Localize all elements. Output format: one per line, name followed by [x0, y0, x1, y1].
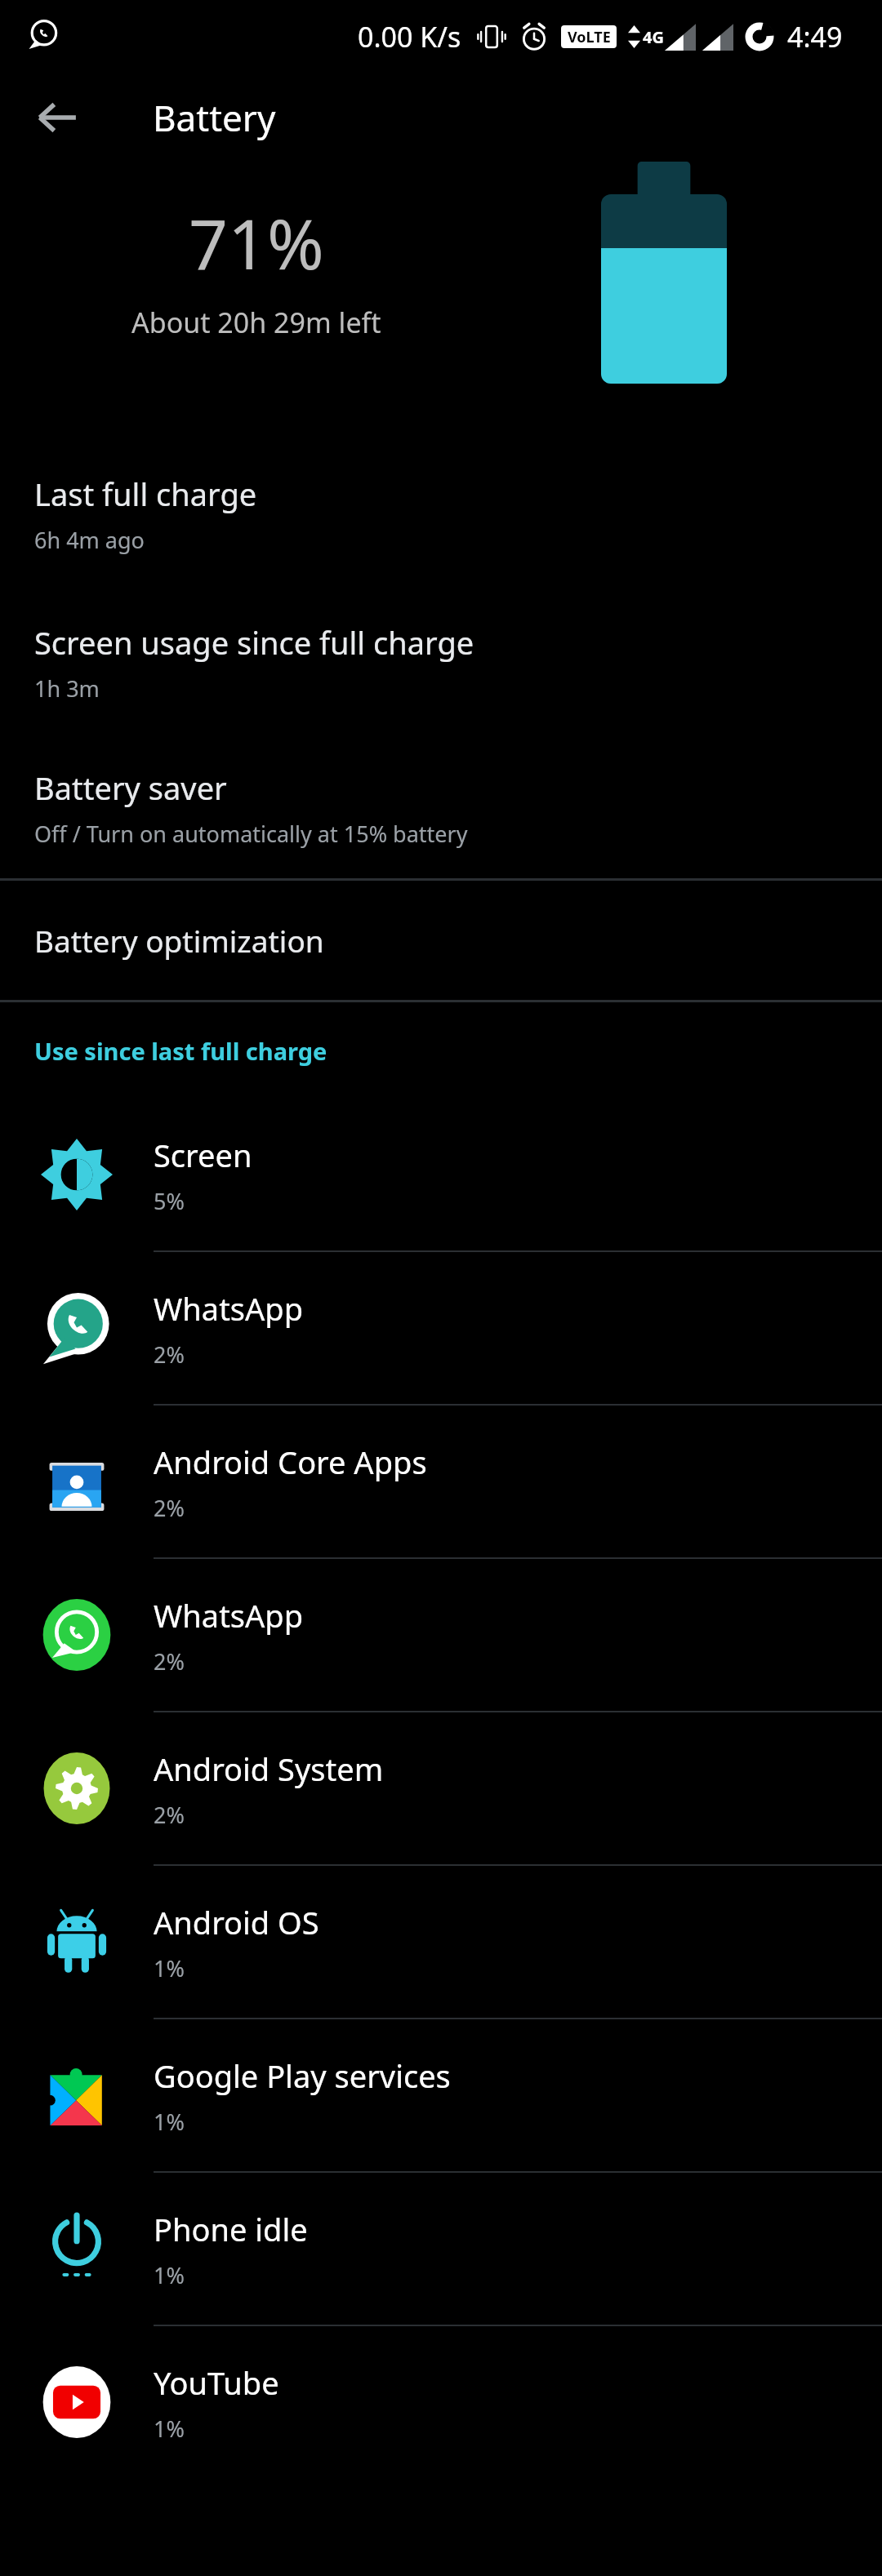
button[interactable]: Last full charge — [0, 439, 882, 588]
staticText: Android Core Apps — [154, 1441, 427, 1483]
staticText: 71% — [189, 196, 324, 289]
staticText: Off / Turn on automatically at 15% batte… — [34, 819, 468, 849]
staticText: 4G — [643, 26, 664, 48]
button[interactable]: Android System — [0, 1712, 882, 1864]
staticText: 6h 4m ago — [34, 525, 145, 555]
staticText: Screen — [154, 1134, 252, 1176]
button[interactable]: Google Play services — [0, 2019, 882, 2171]
staticText: YouTube — [154, 2361, 279, 2404]
staticText: Use since last full charge — [34, 1035, 327, 1067]
staticText: Android System — [154, 1748, 384, 1790]
button[interactable]: Screen usage since full charge — [0, 588, 882, 736]
staticText: 1% — [154, 2414, 185, 2444]
staticText: 0.00 K/s — [358, 18, 461, 56]
staticText: WhatsApp — [154, 1594, 304, 1637]
button[interactable]: WhatsApp — [0, 1559, 882, 1711]
staticText: 1% — [154, 2260, 185, 2290]
button[interactable]: Phone idle — [0, 2173, 882, 2325]
staticText: Battery — [153, 93, 276, 142]
staticText: Battery optimization — [34, 920, 324, 961]
staticText: 4:49 — [787, 18, 843, 56]
staticText: 5% — [154, 1186, 185, 1216]
button[interactable]: Android Core Apps — [0, 1406, 882, 1557]
button[interactable]: WhatsApp — [0, 1252, 882, 1404]
staticText: 2% — [154, 1800, 185, 1830]
staticText: Screen usage since full charge — [34, 621, 474, 664]
button[interactable]: YouTube — [0, 2326, 882, 2478]
staticText: 2% — [154, 1493, 185, 1523]
staticText: Google Play services — [154, 2054, 451, 2097]
staticText: 2% — [154, 1339, 185, 1370]
staticText: Phone idle — [154, 2208, 308, 2250]
staticText: 1% — [154, 1953, 185, 1983]
staticText: WhatsApp — [154, 1287, 304, 1330]
staticText: 1% — [154, 2107, 185, 2137]
button[interactable]: Android OS — [0, 1866, 882, 2018]
button[interactable]: Screen — [0, 1099, 882, 1250]
staticText: Battery saver — [34, 766, 227, 809]
staticText: Android OS — [154, 1901, 319, 1943]
button[interactable]: Back — [23, 83, 91, 152]
staticText: 2% — [154, 1646, 185, 1677]
staticText: VoLTE — [568, 27, 611, 47]
button[interactable]: Battery saver — [0, 736, 882, 878]
staticText: About 20h 29m left — [131, 304, 381, 341]
button[interactable]: Battery optimization — [0, 881, 882, 1000]
staticText: Last full charge — [34, 473, 257, 515]
staticText: 1h 3m — [34, 673, 100, 704]
